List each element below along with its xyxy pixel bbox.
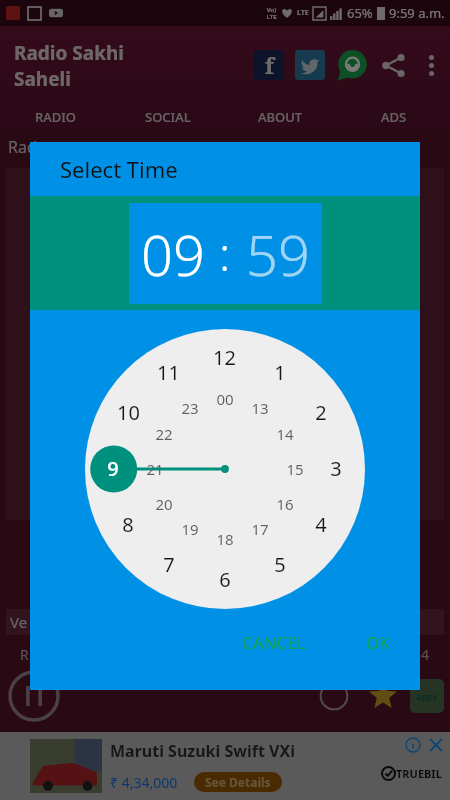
button[interactable]: Close ad — [428, 737, 444, 753]
staticText: Ve ol.. — [10, 612, 267, 632]
staticText: RADIO — [35, 108, 77, 126]
button[interactable]: Pause — [6, 668, 62, 724]
staticText: 6 — [219, 566, 231, 593]
staticText: Vo) LTE — [266, 6, 277, 21]
button[interactable]: See Details — [194, 772, 282, 792]
staticText: 15 — [286, 459, 304, 479]
staticText: 2 — [315, 399, 327, 426]
staticText: 5 — [274, 551, 286, 578]
staticText: apps — [416, 690, 438, 702]
staticText: 13 — [251, 398, 269, 418]
staticText: 3 — [330, 455, 342, 482]
staticText: 12 — [213, 344, 236, 371]
staticText: 7 — [163, 551, 175, 578]
staticText: 1 — [274, 359, 286, 386]
staticText: TRUEBIL — [396, 766, 442, 781]
staticText: Select Time — [60, 154, 178, 184]
button[interactable]: 09 — [129, 203, 217, 304]
staticText: 8 — [122, 511, 134, 538]
button[interactable]: More options — [418, 52, 444, 78]
button[interactable]: WhatsApp — [336, 49, 368, 81]
staticText: 16 — [276, 494, 294, 514]
staticText: 4 — [315, 511, 327, 538]
button[interactable]: Apps — [410, 679, 444, 713]
staticText: 4 — [421, 645, 430, 664]
button[interactable]: SOCIAL — [112, 104, 224, 130]
staticText: 00 — [216, 389, 234, 409]
staticText: 9:59 a.m. — [389, 4, 445, 22]
button[interactable]: ADS — [337, 104, 450, 130]
staticText: R — [20, 645, 29, 664]
staticText: 14 — [276, 424, 294, 444]
button[interactable]: OK — [354, 623, 402, 662]
button[interactable]: Sleep timer — [316, 678, 352, 714]
staticText: 20 — [155, 494, 173, 514]
staticText: f — [265, 50, 274, 80]
button[interactable]: 1 — [85, 329, 365, 609]
staticText: See Details — [205, 774, 271, 790]
staticText: ₹ 4,34,000 — [110, 773, 178, 792]
staticText: LTE — [297, 8, 309, 18]
staticText: 10 — [117, 399, 140, 426]
staticText: CANCEL — [242, 631, 306, 654]
staticText: SOCIAL — [145, 108, 191, 126]
staticText: : — [219, 222, 231, 285]
staticText: 09 — [141, 216, 205, 292]
staticText: 22 — [155, 424, 173, 444]
staticText: Maruti Suzuki Swift VXi — [110, 740, 295, 762]
staticText: 59 — [246, 216, 310, 292]
button[interactable]: RADIO — [0, 104, 112, 130]
button[interactable]: Ad information — [405, 737, 421, 753]
staticText: 17 — [251, 519, 269, 539]
staticText: 18 — [216, 529, 234, 549]
staticText: 9 — [107, 455, 119, 482]
staticText: Rad t.. — [8, 136, 285, 158]
staticText: 23 — [181, 398, 199, 418]
staticText: 65% — [347, 4, 373, 22]
staticText: OK — [366, 631, 390, 654]
button[interactable]: ABOUT — [224, 104, 337, 130]
button[interactable]: Facebook — [254, 50, 284, 80]
button[interactable]: 59 — [233, 203, 322, 304]
button[interactable]: CANCEL — [230, 623, 318, 662]
button[interactable]: Favorite — [366, 679, 400, 713]
button[interactable]: Twitter — [295, 50, 325, 80]
staticText: 11 — [157, 359, 180, 386]
staticText: Radio Sakhi Saheli — [14, 40, 125, 91]
button[interactable]: Share — [379, 51, 407, 79]
staticText: ABOUT — [258, 108, 303, 126]
staticText: 21 — [146, 459, 164, 479]
staticText: ADS — [381, 108, 407, 126]
staticText: 19 — [181, 519, 199, 539]
